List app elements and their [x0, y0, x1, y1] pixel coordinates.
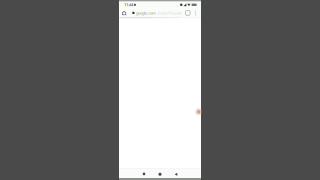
staticText: /search?q=we: [157, 10, 181, 15]
button[interactable]: Recent apps: [136, 168, 152, 178]
button[interactable]: Back: [168, 168, 184, 178]
button[interactable]: Tabs: [184, 8, 192, 17]
staticText: google.com: [136, 10, 156, 15]
button[interactable]: google.com: [129, 8, 184, 17]
button[interactable]: Home: [120, 8, 129, 17]
button[interactable]: More options: [192, 8, 199, 17]
staticText: 11:44: [124, 2, 133, 7]
button[interactable]: Home: [152, 168, 168, 178]
